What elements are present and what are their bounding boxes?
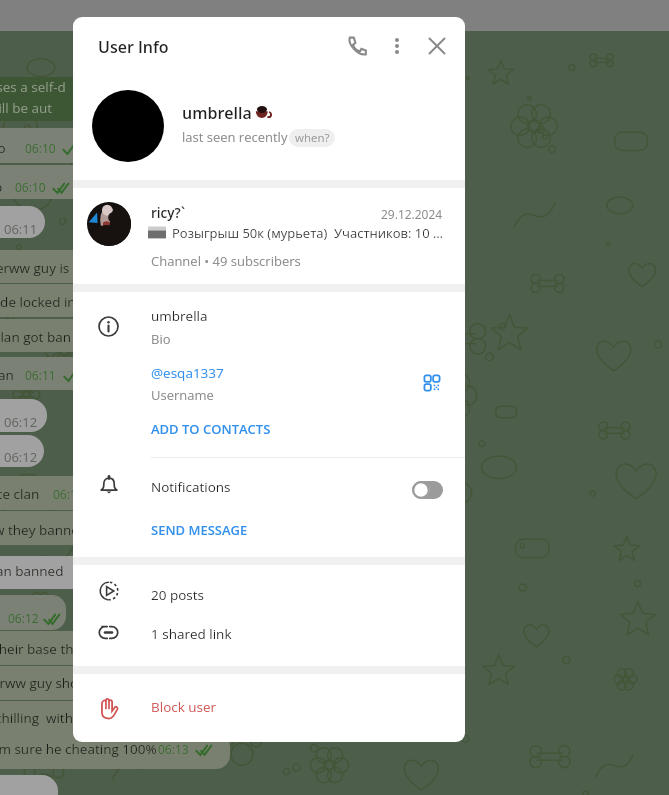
staticText: last seen recently: [182, 128, 288, 146]
button[interactable]: ricy?`: [73, 195, 465, 284]
staticText: erww guy sho: [0, 674, 79, 692]
staticText: 06:12: [4, 413, 38, 431]
staticText: when?: [295, 130, 330, 146]
staticText: an: [0, 366, 14, 384]
staticText: 06:10: [25, 140, 56, 156]
button[interactable]: @esqa1337: [73, 356, 465, 414]
button[interactable]: More options: [379, 28, 415, 64]
staticText: User Info: [98, 36, 169, 58]
staticText: 06:12: [8, 610, 39, 626]
button[interactable]: 1 shared link: [73, 613, 465, 651]
staticText: 06:12: [4, 448, 38, 466]
staticText: umbrella: [182, 102, 252, 124]
button[interactable]: 20 posts: [73, 574, 465, 612]
staticText: chilling with: [0, 709, 73, 727]
staticText: Username: [151, 386, 214, 404]
button[interactable]: ADD TO CONTACTS: [73, 414, 465, 457]
staticText: erww guy is: [0, 259, 70, 277]
staticText: 06:11: [4, 220, 38, 238]
staticText: clan got ban: [0, 328, 71, 346]
staticText: ro: [0, 139, 6, 157]
staticText: Розыгрыш 50к (мурьета) Участников: 10 …: [172, 224, 444, 242]
staticText: 1 shared link: [151, 625, 232, 643]
button[interactable]: Close: [419, 28, 455, 64]
staticText: umbrella: [151, 307, 208, 325]
staticText: 20 posts: [151, 586, 205, 604]
staticText: Bio: [151, 330, 171, 348]
staticText: ADD TO CONTACTS: [151, 420, 271, 438]
staticText: 06:11: [25, 367, 56, 383]
button[interactable]: QR code: [416, 367, 448, 399]
staticText: ricy?`: [151, 204, 185, 222]
staticText: @esqa1337: [151, 364, 224, 382]
staticText: 06:13: [158, 741, 189, 757]
staticText: 06:1: [53, 486, 77, 502]
button[interactable]: SEND MESSAGE: [73, 516, 465, 557]
staticText: an banned: [0, 562, 64, 580]
staticText: Notifications: [151, 478, 231, 496]
staticText: 29.12.2024: [381, 206, 443, 222]
button[interactable]: Block user: [73, 674, 465, 742]
staticText: Channel • 49 subscribers: [151, 252, 301, 270]
staticText: ce clan: [0, 485, 40, 503]
staticText: w they banne: [0, 521, 79, 539]
button[interactable]: when?: [289, 129, 335, 147]
staticText: their base th: [0, 640, 74, 658]
button[interactable]: Notifications: [73, 458, 465, 516]
staticText: im sure he cheating 100%: [0, 740, 157, 758]
button[interactable]: umbrella: [73, 300, 465, 356]
staticText: uses a self-d will be aut: [0, 78, 66, 117]
staticText: 06:10: [15, 179, 46, 195]
staticText: p: [0, 178, 3, 196]
staticText: Block user: [151, 698, 217, 716]
button[interactable]: Call: [339, 28, 375, 64]
staticText: SEND MESSAGE: [151, 521, 248, 539]
staticText: ode locked in: [0, 293, 76, 311]
